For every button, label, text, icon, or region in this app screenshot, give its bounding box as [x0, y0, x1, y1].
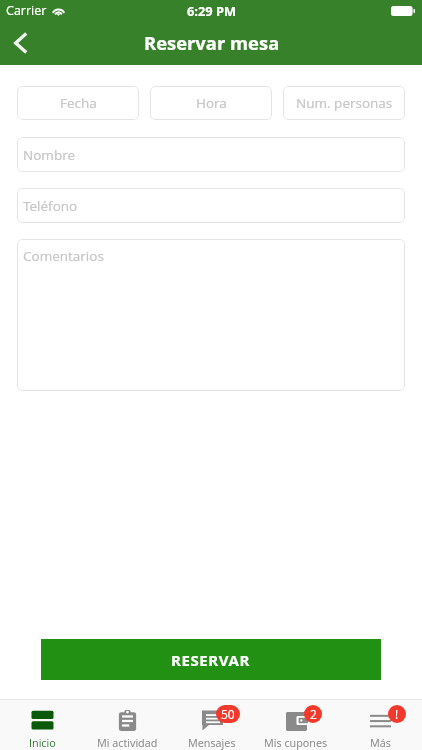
button[interactable]: !: [338, 700, 422, 750]
button[interactable]: Num. personas: [283, 86, 405, 120]
staticText: Num. personas: [296, 94, 393, 112]
staticText: Teléfono: [23, 197, 78, 215]
staticText: Carrier: [6, 2, 47, 19]
staticText: 6:29 PM: [187, 2, 236, 19]
staticText: Fecha: [60, 94, 97, 112]
button[interactable]: Teléfono: [17, 188, 405, 223]
staticText: Inicio: [29, 735, 56, 750]
staticText: Comentarios: [23, 247, 104, 265]
staticText: !: [395, 706, 399, 722]
staticText: Mensajes: [188, 735, 236, 750]
button[interactable]: Mi actividad: [85, 700, 170, 750]
staticText: Mis cupones: [264, 735, 328, 750]
staticText: Hora: [196, 94, 227, 112]
button[interactable]: Hora: [150, 86, 272, 120]
button[interactable]: Comentarios: [17, 239, 405, 391]
staticText: Reservar mesa: [144, 30, 280, 55]
staticText: Más: [370, 735, 391, 750]
button[interactable]: Fecha: [17, 86, 139, 120]
button[interactable]: Nombre: [17, 137, 405, 172]
button[interactable]: Back: [0, 21, 44, 65]
button[interactable]: 2: [254, 700, 338, 750]
button[interactable]: 50: [170, 700, 254, 750]
staticText: Mi actividad: [97, 735, 158, 750]
staticText: 50: [221, 706, 235, 722]
staticText: 2: [310, 706, 317, 722]
staticText: Nombre: [23, 146, 75, 164]
staticText: RESERVAR: [171, 650, 251, 670]
button[interactable]: RESERVAR: [41, 639, 381, 680]
button[interactable]: Inicio: [0, 700, 85, 750]
